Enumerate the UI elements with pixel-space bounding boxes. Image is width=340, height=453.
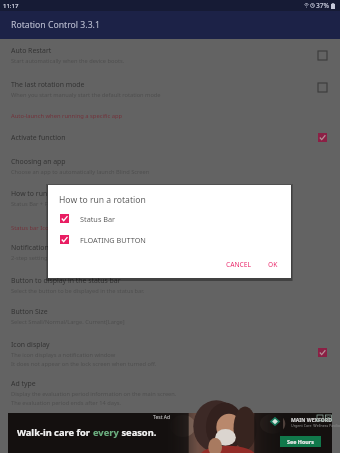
staticText: every [93,426,119,439]
button[interactable]: Activate function [313,128,331,146]
staticText: FLOATING BUTTON [80,235,146,245]
staticText: Auto-launch when running a specific app [11,112,123,120]
staticText: Ad type [11,379,36,388]
staticText: The last rotation mode [11,80,85,89]
button[interactable]: Activate function [0,129,340,153]
button[interactable]: Icon display [0,336,340,375]
staticText: Rotation Control 3.3.1 [11,19,100,31]
staticText: The evaluation period ends after 14 days… [11,399,122,407]
staticText: How to run a rotation [59,194,146,206]
staticText: Button to display in the status bar [11,276,121,285]
staticText: Activate function [11,133,66,142]
button[interactable]: How to run a rotation [0,185,340,221]
staticText: Status bar Icon [11,224,53,232]
staticText: Walk-in care for [17,426,93,439]
staticText: Display the evaluation period informatio… [11,390,177,398]
button[interactable]: See Hours [280,436,321,447]
button[interactable]: OK [264,257,282,272]
button[interactable]: Choosing an app [0,153,340,185]
button[interactable]: CANCEL [222,257,256,272]
staticText: Choose an app to automatically launch Bl… [11,168,150,176]
staticText: Choosing an app [11,157,66,166]
staticText: Select Small/Normal/Large. Current[Large… [11,318,125,326]
staticText: Status Bar [80,214,116,224]
staticText: Icon display [11,340,50,349]
staticText: 11:17 [3,2,19,10]
staticText: Button Size [11,307,48,316]
staticText: OK [268,260,278,269]
button[interactable]: Icon display [313,343,331,361]
staticText: Notification [11,243,49,252]
button[interactable]: Button to display in the status bar [0,272,340,303]
button[interactable]: Notification [0,239,340,272]
staticText: Auto Restart [11,46,52,55]
staticText: season. [119,426,157,439]
button[interactable]: Auto Restart [0,42,340,76]
staticText: The icon displays a notification window [11,351,116,359]
staticText: It does not appear on the lock screen wh… [11,360,157,368]
button[interactable]: The last rotation mode [313,78,331,96]
staticText: Start automatically when the device boot… [11,57,125,65]
button[interactable]: Auto Restart [313,46,331,64]
staticText: When you start manualy start the default… [11,91,161,99]
button[interactable]: Advertisement [8,413,332,453]
staticText: MAIN WEXFORD [291,417,332,424]
staticText: Status Bar + Floating button [11,200,86,208]
staticText: Test Ad [153,414,171,421]
button[interactable]: Ad type [0,375,340,405]
staticText: 37% [316,1,330,10]
staticText: CANCEL [226,260,252,269]
button[interactable]: Status Bar [48,210,291,227]
button[interactable]: FLOATING BUTTON [48,231,291,248]
staticText: 2-step setting [11,254,48,262]
staticText: Urgent Care Wellness Pavilion [291,423,340,428]
staticText: How to run a rotation [11,189,81,198]
staticText: Select the button to be displayed in the… [11,287,145,295]
button[interactable]: The last rotation mode [0,76,340,109]
staticText: See Hours [287,438,314,445]
